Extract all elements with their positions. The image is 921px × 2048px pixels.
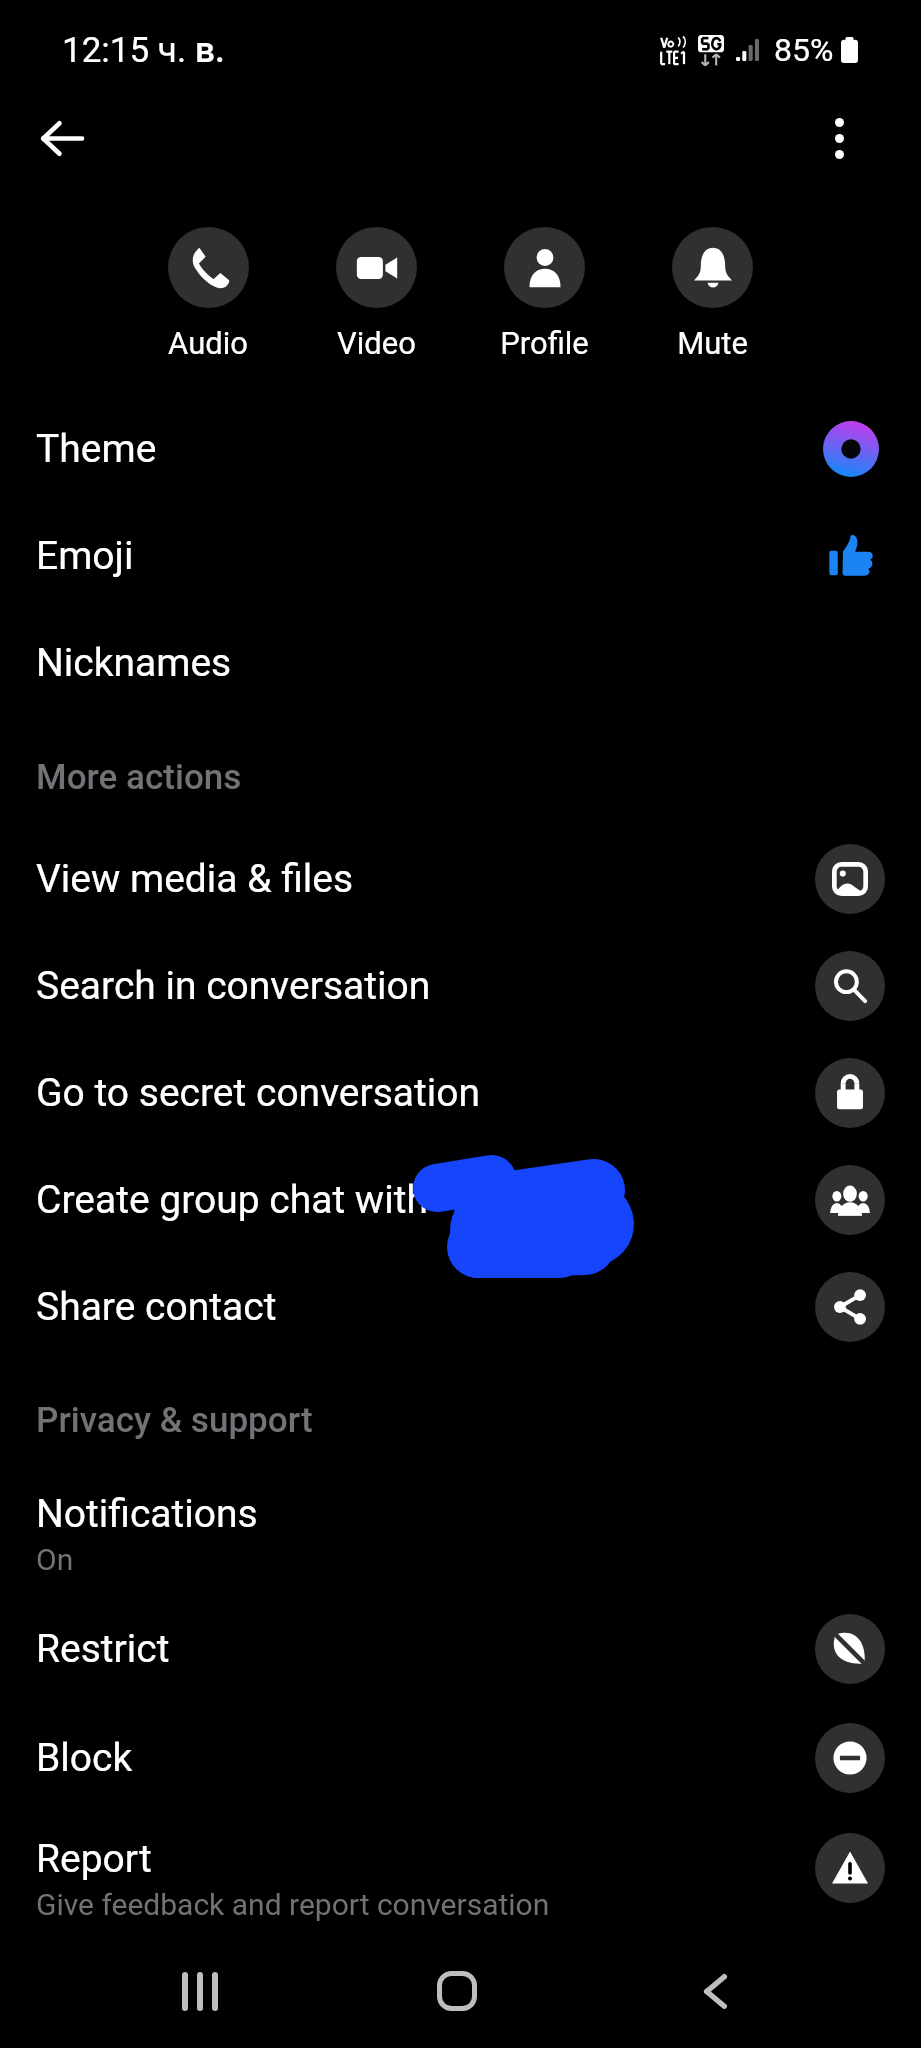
staticText: Report bbox=[36, 1836, 152, 1882]
button[interactable]: Back bbox=[647, 1930, 783, 2048]
button[interactable]: Notifications bbox=[0, 1460, 921, 1567]
button[interactable]: Mute bbox=[628, 227, 796, 361]
button[interactable]: Block bbox=[0, 1704, 921, 1811]
staticText: Theme bbox=[36, 426, 157, 472]
button[interactable]: Emoji bbox=[0, 502, 921, 609]
staticText: Restrict bbox=[36, 1626, 170, 1672]
staticText: Mute bbox=[677, 325, 748, 361]
button[interactable]: Restrict bbox=[0, 1595, 921, 1702]
button[interactable]: Home bbox=[389, 1930, 525, 2048]
button[interactable]: Nicknames bbox=[0, 609, 921, 716]
button[interactable]: Video bbox=[292, 227, 460, 361]
staticText: On bbox=[36, 1542, 74, 1577]
staticText: Notifications bbox=[36, 1491, 258, 1537]
button[interactable]: Theme bbox=[0, 395, 921, 502]
staticText: Create group chat with bbox=[36, 1177, 428, 1223]
staticText: Give feedback and report conversation bbox=[36, 1887, 550, 1922]
staticText: Nicknames bbox=[36, 640, 232, 686]
staticText: More actions bbox=[36, 757, 242, 798]
staticText: View media & files bbox=[36, 856, 354, 902]
staticText: Audio bbox=[168, 325, 248, 361]
button[interactable]: Go to secret conversation bbox=[0, 1039, 921, 1146]
button[interactable]: View media & files bbox=[0, 825, 921, 932]
button[interactable]: Profile bbox=[460, 227, 628, 361]
staticText: Profile bbox=[500, 325, 589, 361]
button[interactable]: Audio bbox=[124, 227, 292, 361]
staticText: Share contact bbox=[36, 1284, 277, 1330]
staticText: Search in conversation bbox=[36, 963, 431, 1009]
staticText: 12:15 ч. bbox=[62, 30, 195, 71]
staticText: Emoji bbox=[36, 533, 134, 579]
staticText: Go to secret conversation bbox=[36, 1070, 481, 1116]
staticText: Privacy & support bbox=[36, 1400, 313, 1441]
button[interactable]: Create group chat with bbox=[0, 1146, 921, 1253]
button[interactable]: Report bbox=[0, 1805, 921, 1912]
button[interactable]: Recent apps bbox=[132, 1930, 268, 2048]
staticText: в. bbox=[195, 30, 225, 71]
button[interactable]: More options bbox=[797, 96, 881, 180]
button[interactable]: Share contact bbox=[0, 1253, 921, 1360]
staticText: 85% bbox=[774, 31, 834, 69]
button[interactable]: Back bbox=[20, 96, 104, 180]
staticText: Block bbox=[36, 1735, 133, 1781]
staticText: Video bbox=[337, 325, 416, 361]
button[interactable]: Search in conversation bbox=[0, 932, 921, 1039]
